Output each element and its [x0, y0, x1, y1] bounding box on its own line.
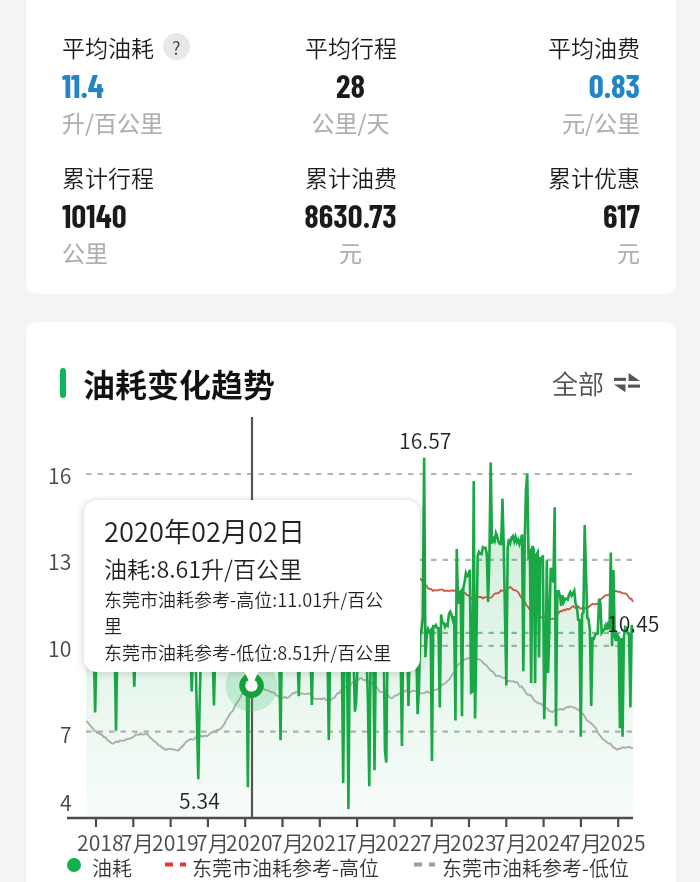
staticText: 10140: [62, 195, 254, 235]
staticText: 7月: [196, 827, 229, 857]
staticText: 617: [447, 195, 640, 235]
button[interactable]: Help: [163, 33, 190, 60]
staticText: 东莞市油耗参考-高位: [192, 853, 379, 882]
staticText: 全部: [552, 364, 605, 402]
staticText: 2023: [450, 827, 497, 857]
staticText: 7月: [271, 827, 304, 857]
staticText: 东莞市油耗参考-低位: [442, 853, 629, 882]
staticText: 7月: [345, 827, 378, 857]
staticText: 2020: [226, 827, 273, 857]
staticText: 2022: [375, 827, 422, 857]
staticText: 7月: [494, 827, 527, 857]
button[interactable]: 全部: [552, 364, 640, 402]
button[interactable]: 累计行程: [62, 160, 254, 268]
staticText: 28: [254, 65, 447, 105]
staticText: 累计行程: [62, 160, 154, 193]
staticText: 平均油费: [548, 30, 640, 63]
button[interactable]: 累计油费: [254, 160, 447, 268]
staticText: 11.4: [62, 65, 254, 105]
button[interactable]: 累计优惠: [447, 160, 640, 268]
staticText: ?: [172, 34, 181, 60]
button[interactable]: 平均油费: [447, 30, 640, 138]
staticText: 16: [48, 460, 72, 490]
staticText: 东莞市油耗参考-高位:11.01升/百公里: [104, 586, 387, 638]
button[interactable]: 2020年02月02日: [84, 500, 420, 672]
staticText: 2025: [599, 827, 646, 857]
staticText: 油耗:8.61升/百公里: [104, 551, 303, 584]
staticText: 2018: [77, 827, 124, 857]
staticText: 公里: [62, 235, 254, 268]
staticText: 元: [447, 235, 640, 268]
staticText: 7月: [569, 827, 602, 857]
other: Filter: [614, 370, 640, 396]
staticText: 7月: [420, 827, 453, 857]
staticText: 5.34: [179, 785, 220, 815]
staticText: 7月: [121, 827, 154, 857]
staticText: 元: [254, 235, 447, 268]
staticText: 油耗变化趋势: [83, 360, 276, 406]
staticText: 10: [48, 633, 72, 663]
staticText: 平均油耗: [62, 30, 154, 63]
staticText: 油耗: [92, 853, 132, 882]
staticText: 东莞市油耗参考-低位:8.51升/百公里: [104, 639, 392, 665]
staticText: 累计优惠: [548, 160, 640, 193]
staticText: 2019: [152, 827, 199, 857]
staticText: 2020年02月02日: [104, 511, 305, 550]
staticText: 元/公里: [447, 105, 640, 138]
staticText: 升/百公里: [62, 105, 254, 138]
staticText: 0.83: [447, 65, 640, 105]
staticText: 2024: [525, 827, 572, 857]
staticText: 8630.73: [254, 195, 447, 235]
staticText: 13: [48, 546, 72, 576]
button[interactable]: 平均油耗: [62, 30, 254, 138]
staticText: 累计油费: [305, 160, 397, 193]
staticText: 平均行程: [305, 30, 397, 63]
staticText: 公里/天: [254, 105, 447, 138]
staticText: 2021: [301, 827, 348, 857]
button[interactable]: 平均行程: [254, 30, 447, 138]
staticText: 4: [60, 787, 72, 817]
staticText: 16.57: [399, 425, 452, 455]
staticText: 7: [60, 719, 72, 749]
staticText: 10.45: [607, 608, 660, 638]
